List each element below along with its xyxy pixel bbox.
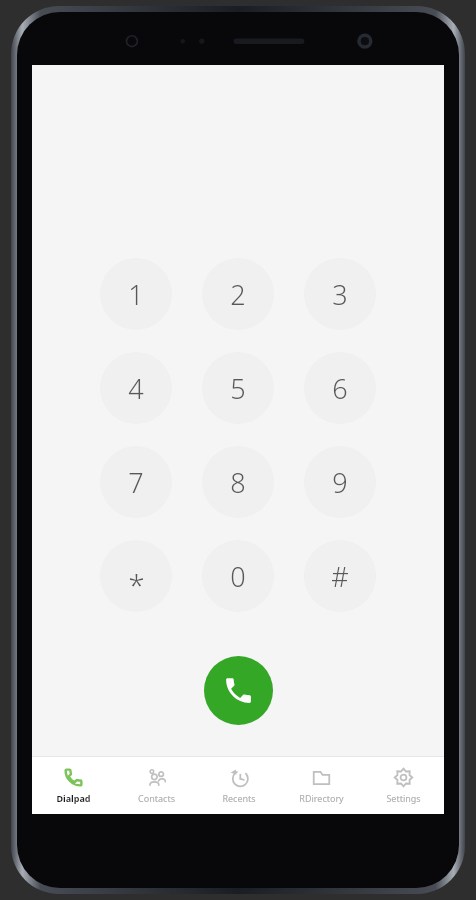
button[interactable]: 2 <box>202 258 274 330</box>
button[interactable]: 1 <box>100 258 172 330</box>
staticText: 8 <box>230 464 246 501</box>
button[interactable]: 6 <box>304 352 376 424</box>
staticText: 0 <box>230 558 246 595</box>
staticText: * <box>128 564 145 605</box>
button[interactable]: 3 <box>304 258 376 330</box>
button[interactable]: RDirectory <box>280 757 362 814</box>
staticText: 4 <box>128 370 144 407</box>
button[interactable]: 8 <box>202 446 274 518</box>
button[interactable]: 7 <box>100 446 172 518</box>
button[interactable]: Contacts <box>115 757 198 814</box>
button[interactable]: # <box>304 540 376 612</box>
staticText: RDirectory <box>299 792 344 804</box>
staticText: Settings <box>386 792 421 804</box>
button[interactable]: Call <box>204 656 273 725</box>
staticText: 7 <box>128 464 144 501</box>
staticText: 2 <box>230 276 246 313</box>
staticText: Recents <box>222 792 256 804</box>
staticText: 6 <box>332 370 348 407</box>
staticText: 1 <box>128 276 144 313</box>
button[interactable]: 9 <box>304 446 376 518</box>
staticText: # <box>331 558 349 595</box>
button[interactable]: 5 <box>202 352 274 424</box>
staticText: Dialpad <box>56 792 91 804</box>
button[interactable]: 4 <box>100 352 172 424</box>
button[interactable]: Dialpad <box>32 757 115 814</box>
button[interactable]: * <box>100 540 172 612</box>
staticText: 3 <box>332 276 348 313</box>
staticText: 5 <box>230 370 246 407</box>
staticText: Contacts <box>138 792 175 804</box>
staticText: 9 <box>332 464 348 501</box>
button[interactable]: Settings <box>362 757 444 814</box>
button[interactable]: Recents <box>198 757 280 814</box>
button[interactable]: 0 <box>202 540 274 612</box>
